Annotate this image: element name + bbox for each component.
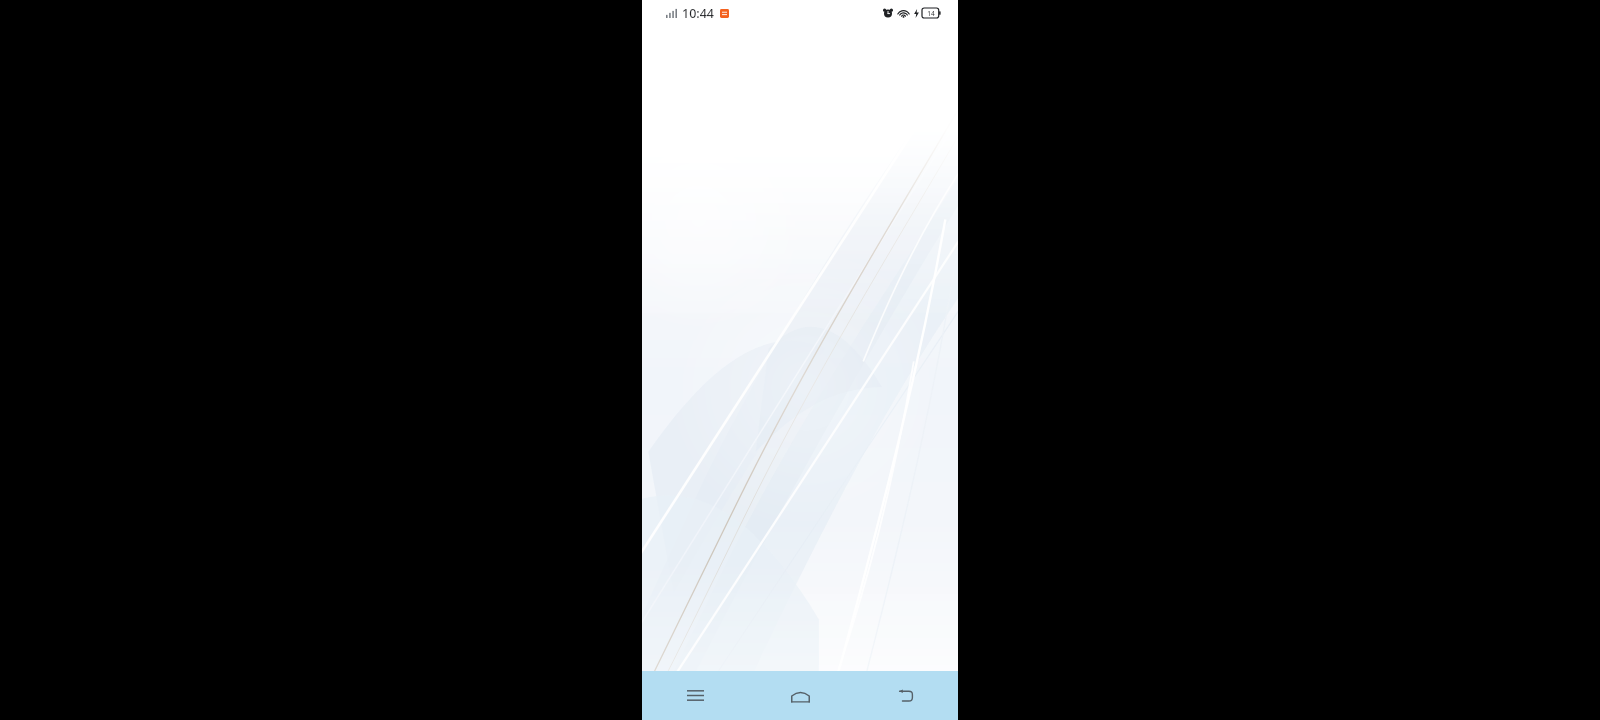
button[interactable]: Home (748, 671, 853, 720)
staticText: 14 (927, 9, 935, 18)
staticText: 10:44 (682, 5, 715, 22)
button[interactable]: Recent apps (642, 671, 748, 720)
button[interactable]: Back (853, 671, 958, 720)
